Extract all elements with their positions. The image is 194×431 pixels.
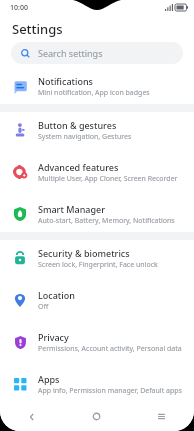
staticText: Settings [12, 20, 63, 38]
staticText: System navigation, Gestures [38, 132, 132, 142]
button[interactable]: Apps [0, 366, 194, 402]
button[interactable]: Notifications [0, 68, 194, 104]
button[interactable]: Advanced features [0, 154, 194, 190]
button[interactable]: Recents [129, 402, 194, 431]
button[interactable]: Button & gestures [0, 112, 194, 148]
staticText: Mini notification, App icon badges [38, 88, 150, 98]
staticText: App info, Permission manager, Default ap… [38, 386, 182, 396]
staticText: Apps [38, 373, 60, 385]
staticText: Permissions, Account activity, Personal … [38, 344, 182, 354]
staticText: Button & gestures [38, 119, 117, 131]
staticText: Privacy [38, 331, 69, 343]
staticText: Smart Manager [38, 203, 105, 215]
staticText: Auto-start, Battery, Memory, Notificatio… [38, 216, 175, 226]
staticText: Off [38, 302, 49, 312]
button[interactable]: Back [0, 402, 64, 431]
staticText: Search settings [38, 47, 103, 59]
staticText: Security & biometrics [38, 247, 130, 259]
staticText: Screen lock, Fingerprint, Face unlock [38, 260, 158, 270]
button[interactable]: Security & biometrics [0, 240, 194, 276]
staticText: Notifications [38, 75, 93, 87]
staticText: Advanced features [38, 161, 119, 173]
button[interactable]: Home [64, 402, 129, 431]
staticText: Location [38, 289, 75, 301]
button[interactable]: Smart Manager [0, 196, 194, 232]
staticText: 10:00 [10, 3, 28, 13]
button[interactable]: Privacy [0, 324, 194, 360]
button[interactable]: Search settings [11, 42, 183, 64]
staticText: Multiple User, App Cloner, Screen Record… [38, 174, 178, 184]
button[interactable]: Location [0, 282, 194, 318]
